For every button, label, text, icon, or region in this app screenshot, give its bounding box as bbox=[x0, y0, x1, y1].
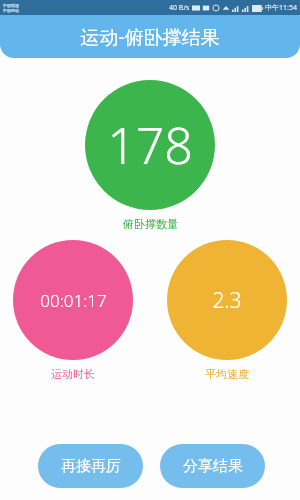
staticText: 俯卧撑数量 bbox=[123, 217, 178, 231]
button[interactable]: 178 bbox=[85, 80, 215, 210]
staticText: 中午11:54 bbox=[265, 3, 297, 13]
staticText: 中国移动 bbox=[3, 8, 19, 13]
staticText: 分享结果 bbox=[183, 457, 243, 476]
button[interactable]: 再接再厉 bbox=[38, 444, 143, 488]
staticText: 中国联通 bbox=[3, 3, 19, 8]
staticText: 运动-俯卧撑结果 bbox=[80, 24, 220, 50]
staticText: 平均速度 bbox=[205, 367, 249, 381]
staticText: 40 B/s bbox=[169, 3, 190, 13]
staticText: 再接再厉 bbox=[61, 457, 121, 476]
staticText: 2.3 bbox=[212, 286, 242, 315]
button[interactable]: 00:01:17 bbox=[13, 240, 133, 360]
staticText: 178 bbox=[107, 111, 193, 179]
staticText: 运动时长 bbox=[51, 367, 95, 381]
button[interactable]: 分享结果 bbox=[160, 444, 265, 488]
button[interactable]: 2.3 bbox=[167, 240, 287, 360]
staticText: 00:01:17 bbox=[40, 289, 107, 312]
